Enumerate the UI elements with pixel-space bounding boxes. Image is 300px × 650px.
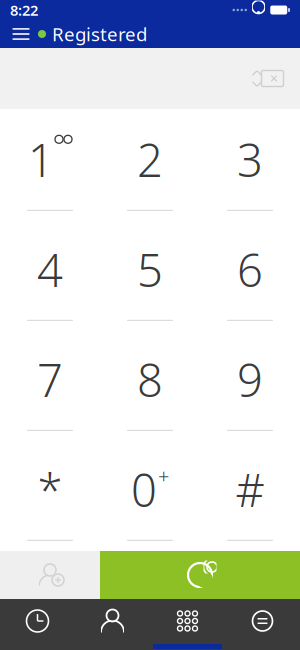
button[interactable]: 5 (100, 219, 200, 329)
button[interactable]: 8 (100, 329, 200, 439)
staticText: 1 (28, 129, 54, 189)
staticText: 0 (131, 459, 157, 519)
button[interactable]: 3 (200, 109, 300, 219)
button[interactable]: 6 (200, 219, 300, 329)
staticText: 6 (237, 239, 263, 299)
button[interactable]: 0 (100, 439, 200, 549)
staticText: 8 (137, 349, 163, 409)
button[interactable]: Recents (0, 599, 75, 643)
staticText: * (37, 459, 62, 519)
button[interactable]: 2 (100, 109, 200, 219)
button[interactable]: Call (100, 551, 300, 599)
button[interactable]: 1 (0, 109, 100, 219)
staticText: 9 (237, 349, 263, 409)
staticText: 7 (37, 349, 63, 409)
button[interactable]: Menu (4, 20, 38, 48)
staticText: Registered (52, 22, 147, 46)
staticText: 8:22 (10, 0, 38, 20)
button[interactable]: Keypad (150, 599, 225, 643)
button[interactable]: 4 (0, 219, 100, 329)
staticText: 4 (37, 239, 63, 299)
button[interactable]: * (0, 439, 100, 549)
button[interactable]: Add contact (0, 551, 100, 599)
staticText: # (235, 459, 264, 519)
staticText: + (158, 462, 169, 489)
button[interactable]: 9 (200, 329, 300, 439)
button[interactable]: Backspace (244, 59, 292, 97)
button[interactable]: Contacts (75, 599, 150, 643)
staticText: 5 (137, 239, 163, 299)
staticText: 3 (237, 129, 263, 189)
button[interactable]: # (200, 439, 300, 549)
button[interactable]: Messages (225, 599, 300, 643)
button[interactable]: 7 (0, 329, 100, 439)
staticText: 2 (137, 129, 163, 189)
